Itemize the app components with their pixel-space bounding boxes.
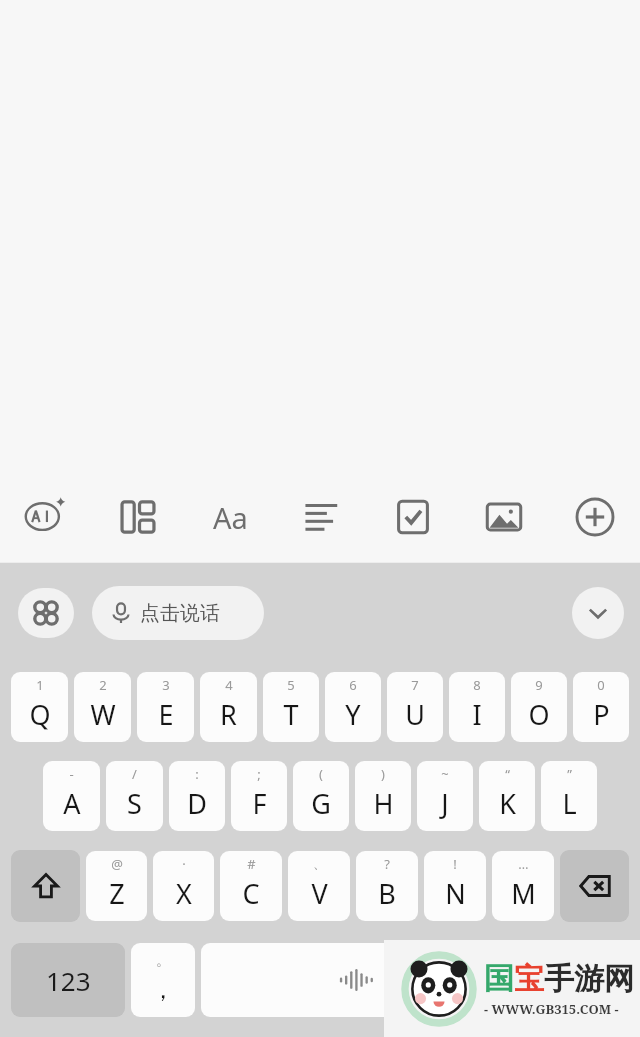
button[interactable]: Checklist: [367, 486, 458, 548]
staticText: ;: [257, 765, 261, 783]
button[interactable]: Space: [201, 943, 509, 1017]
staticText: B: [378, 875, 396, 912]
staticText: 。: [156, 952, 170, 970]
staticText: Q: [29, 696, 51, 733]
staticText: 宝: [514, 960, 544, 998]
staticText: 5: [287, 676, 295, 694]
button[interactable]: Font: [184, 486, 276, 548]
staticText: /: [132, 765, 137, 783]
button[interactable]: 9: [511, 672, 567, 742]
staticText: 国: [484, 960, 514, 998]
staticText: !: [453, 855, 457, 873]
button[interactable]: 1: [11, 672, 68, 742]
button[interactable]: Keyboard panel: [18, 588, 74, 638]
staticText: Y: [345, 696, 361, 733]
staticText: (: [319, 765, 323, 783]
staticText: …: [518, 855, 529, 873]
button[interactable]: 8: [449, 672, 505, 742]
staticText: 123: [46, 963, 91, 998]
button[interactable]: …: [492, 851, 554, 921]
button[interactable]: #: [220, 851, 282, 921]
button[interactable]: AI assist: [0, 486, 92, 548]
button[interactable]: 点击说话: [92, 586, 264, 640]
staticText: 0: [597, 676, 605, 694]
button[interactable]: /: [106, 761, 163, 831]
staticText: Aa: [213, 498, 248, 537]
staticText: O: [528, 696, 550, 733]
button[interactable]: ?: [356, 851, 418, 921]
staticText: W: [90, 696, 116, 733]
button[interactable]: -: [43, 761, 100, 831]
staticText: ·: [182, 855, 186, 873]
staticText: :: [195, 765, 199, 783]
staticText: “: [505, 765, 510, 783]
staticText: 7: [411, 676, 419, 694]
staticText: 6: [349, 676, 357, 694]
button[interactable]: 0: [573, 672, 629, 742]
button[interactable]: Hide keyboard: [572, 587, 624, 639]
staticText: H: [373, 785, 394, 822]
staticText: 点击说话: [140, 601, 220, 626]
staticText: -: [69, 765, 74, 783]
button[interactable]: Enter: [515, 943, 629, 1017]
staticText: N: [445, 875, 466, 912]
staticText: P: [593, 696, 610, 733]
staticText: Z: [109, 875, 125, 912]
staticText: S: [127, 785, 142, 822]
staticText: ，: [151, 975, 175, 1005]
button[interactable]: Backspace: [560, 850, 629, 922]
staticText: D: [187, 785, 207, 822]
staticText: G: [311, 785, 331, 822]
staticText: A: [63, 785, 81, 822]
staticText: ): [381, 765, 385, 783]
staticText: #: [247, 855, 256, 873]
button[interactable]: Image: [458, 486, 549, 548]
staticText: ?: [384, 855, 390, 873]
button[interactable]: ·: [153, 851, 214, 921]
button[interactable]: :: [169, 761, 225, 831]
button[interactable]: !: [424, 851, 486, 921]
staticText: ~: [441, 765, 449, 783]
staticText: @: [111, 855, 123, 873]
button[interactable]: Shift: [11, 850, 80, 922]
staticText: U: [405, 696, 425, 733]
button[interactable]: ”: [541, 761, 597, 831]
staticText: 1: [36, 676, 44, 694]
button[interactable]: More: [549, 486, 640, 548]
staticText: 2: [99, 676, 107, 694]
button[interactable]: ~: [417, 761, 473, 831]
staticText: K: [499, 785, 516, 822]
button[interactable]: 4: [200, 672, 257, 742]
staticText: T: [283, 696, 299, 733]
button[interactable]: ): [355, 761, 411, 831]
button[interactable]: 2: [74, 672, 131, 742]
staticText: M: [511, 875, 536, 912]
staticText: 、: [313, 855, 326, 871]
button[interactable]: @: [86, 851, 147, 921]
staticText: V: [311, 875, 328, 912]
button[interactable]: 、: [288, 851, 350, 921]
button[interactable]: Align: [276, 486, 367, 548]
staticText: F: [252, 785, 267, 822]
staticText: - WWW.GB315.COM -: [484, 1000, 619, 1018]
button[interactable]: Comma: [131, 943, 195, 1017]
button[interactable]: 6: [325, 672, 381, 742]
staticText: C: [242, 875, 260, 912]
staticText: 9: [535, 676, 543, 694]
button[interactable]: Layout: [92, 486, 184, 548]
button[interactable]: ;: [231, 761, 287, 831]
staticText: L: [562, 785, 577, 822]
button[interactable]: 5: [263, 672, 319, 742]
button[interactable]: 7: [387, 672, 443, 742]
staticText: I: [472, 696, 482, 733]
staticText: J: [441, 785, 449, 822]
button[interactable]: 123: [11, 943, 125, 1017]
staticText: 3: [162, 676, 170, 694]
staticText: 4: [225, 676, 233, 694]
button[interactable]: “: [479, 761, 535, 831]
staticText: 8: [473, 676, 481, 694]
staticText: E: [158, 696, 174, 733]
button[interactable]: (: [293, 761, 349, 831]
staticText: R: [220, 696, 237, 733]
button[interactable]: 3: [137, 672, 194, 742]
